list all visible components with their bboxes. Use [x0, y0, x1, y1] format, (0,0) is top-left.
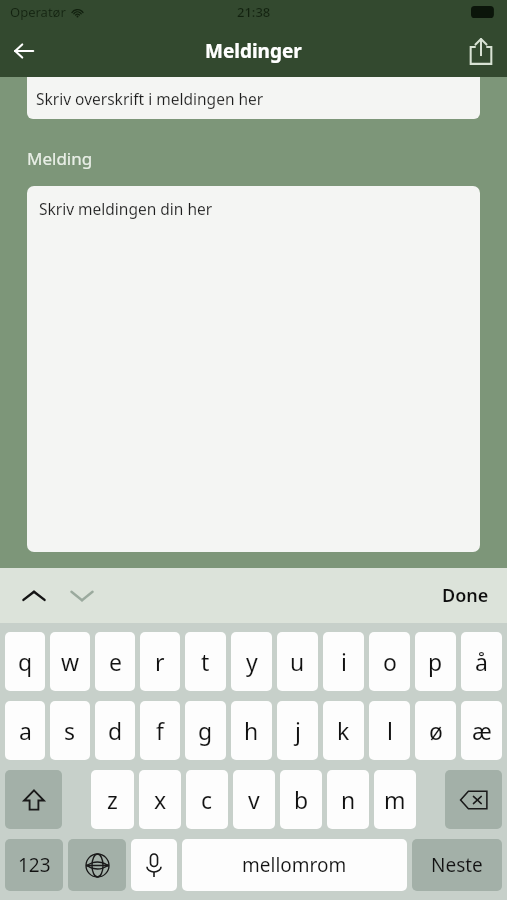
button[interactable]: a	[5, 701, 45, 760]
button[interactable]: Backspace	[445, 770, 502, 829]
button[interactable]: w	[50, 632, 90, 691]
staticText: q	[18, 646, 33, 677]
staticText: Skriv meldingen din her	[39, 198, 213, 219]
staticText: mellomrom	[242, 852, 347, 878]
button[interactable]: Share	[455, 25, 507, 77]
staticText: d	[108, 715, 123, 746]
button[interactable]: r	[140, 632, 180, 691]
button[interactable]: t	[185, 632, 226, 691]
button[interactable]: Voice input	[131, 839, 177, 891]
button[interactable]: v	[233, 770, 275, 829]
button[interactable]: z	[91, 770, 134, 829]
staticText: ø	[429, 715, 443, 746]
staticText: u	[290, 646, 305, 677]
staticText: j	[295, 715, 301, 746]
staticText: 21:38	[237, 3, 271, 21]
staticText: w	[61, 646, 80, 677]
staticText: å	[475, 646, 488, 677]
button[interactable]: c	[186, 770, 228, 829]
button[interactable]: m	[374, 770, 416, 829]
staticText: l	[387, 715, 393, 746]
button[interactable]: Skriv meldingen din her	[27, 186, 480, 552]
button[interactable]: k	[323, 701, 364, 760]
button[interactable]: Change keyboard language	[68, 839, 126, 891]
button[interactable]: mellomrom	[182, 839, 407, 891]
staticText: i	[341, 646, 347, 677]
staticText: x	[154, 784, 167, 815]
button[interactable]: Previous field	[14, 576, 54, 616]
staticText: æ	[472, 715, 492, 746]
button[interactable]: p	[415, 632, 456, 691]
staticText: g	[198, 715, 213, 746]
staticText: s	[64, 715, 76, 746]
button[interactable]: o	[369, 632, 410, 691]
button[interactable]: f	[140, 701, 180, 760]
staticText: t	[201, 646, 210, 677]
staticText: m	[384, 784, 406, 815]
staticText: k	[337, 715, 350, 746]
button[interactable]: Skriv overskrift i meldingen her	[27, 77, 480, 119]
button[interactable]: j	[277, 701, 318, 760]
button[interactable]: s	[50, 701, 90, 760]
button[interactable]: x	[139, 770, 181, 829]
staticText: c	[201, 784, 213, 815]
staticText: Neste	[431, 852, 483, 878]
button[interactable]: y	[231, 632, 272, 691]
button[interactable]: i	[323, 632, 364, 691]
staticText: a	[19, 715, 32, 746]
staticText: Operatør	[10, 3, 66, 21]
button[interactable]: g	[185, 701, 226, 760]
staticText: z	[107, 784, 118, 815]
staticText: 123	[18, 852, 51, 878]
staticText: e	[109, 646, 122, 677]
button[interactable]: 123	[5, 839, 63, 891]
staticText: Melding	[27, 147, 93, 170]
staticText: Done	[442, 583, 489, 608]
button[interactable]: Next field	[62, 576, 102, 616]
staticText: v	[248, 784, 260, 815]
button[interactable]: Back	[0, 27, 48, 75]
button[interactable]: Shift	[5, 770, 62, 829]
staticText: f	[156, 715, 164, 746]
button[interactable]: n	[327, 770, 369, 829]
button[interactable]: u	[277, 632, 318, 691]
staticText: n	[341, 784, 356, 815]
button[interactable]: Neste	[412, 839, 502, 891]
staticText: p	[428, 646, 443, 677]
button[interactable]: q	[5, 632, 45, 691]
button[interactable]: ø	[415, 701, 456, 760]
button[interactable]: h	[231, 701, 272, 760]
staticText: Meldinger	[205, 38, 302, 64]
button[interactable]: b	[280, 770, 322, 829]
button[interactable]: d	[95, 701, 135, 760]
staticText: Skriv overskrift i meldingen her	[36, 88, 264, 109]
button[interactable]: l	[369, 701, 410, 760]
button[interactable]: å	[461, 632, 502, 691]
button[interactable]: e	[95, 632, 135, 691]
staticText: y	[246, 646, 258, 677]
staticText: h	[244, 715, 259, 746]
staticText: o	[383, 646, 397, 677]
staticText: r	[155, 646, 165, 677]
button[interactable]: Done	[424, 573, 507, 618]
button[interactable]: æ	[461, 701, 502, 760]
staticText: b	[294, 784, 309, 815]
